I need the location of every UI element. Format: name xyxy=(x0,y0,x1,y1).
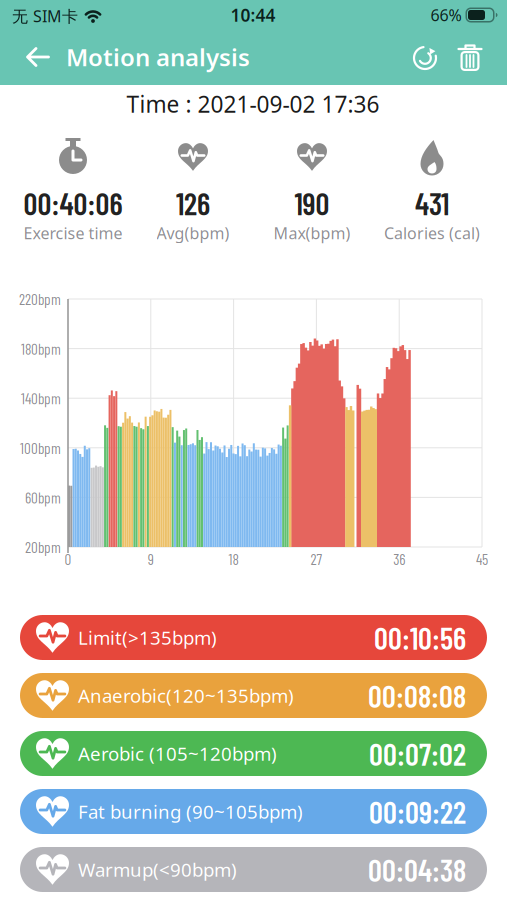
staticText: 220bpm xyxy=(19,290,61,308)
button[interactable]: Warmup(<90bpm) xyxy=(20,847,487,892)
staticText: 00:07:02 xyxy=(369,735,466,772)
staticText: Limit(>135bpm) xyxy=(78,625,217,650)
button[interactable]: Refresh xyxy=(405,37,445,77)
staticText: 9 xyxy=(148,550,154,568)
staticText: 60bpm xyxy=(25,488,61,506)
staticText: Warmup(<90bpm) xyxy=(78,857,237,882)
staticText: 10:44 xyxy=(230,3,275,26)
staticText: 00:40:06 xyxy=(23,185,122,221)
staticText: Calories (cal) xyxy=(384,222,480,244)
staticText: 00:10:56 xyxy=(374,619,466,656)
staticText: 431 xyxy=(415,185,449,221)
button[interactable]: Fat burning (90~105bpm) xyxy=(20,789,487,834)
staticText: 140bpm xyxy=(21,389,61,407)
staticText: 36 xyxy=(393,550,405,568)
staticText: Motion analysis xyxy=(66,41,250,73)
button[interactable]: Delete xyxy=(450,37,490,77)
staticText: Fat burning (90~105bpm) xyxy=(78,799,303,824)
staticText: 20bpm xyxy=(25,538,61,556)
staticText: Aerobic (105~120bpm) xyxy=(78,741,277,766)
staticText: 00:04:38 xyxy=(368,851,466,888)
staticText: 126 xyxy=(176,185,210,221)
staticText: 66% xyxy=(430,4,461,26)
staticText: 00:09:22 xyxy=(369,793,466,830)
staticText: 00:08:08 xyxy=(368,677,466,714)
staticText: 45 xyxy=(476,550,488,568)
staticText: 190 xyxy=(294,185,329,221)
staticText: Exercise time xyxy=(23,222,122,244)
staticText: 0 xyxy=(64,550,71,568)
staticText: 无 SIM卡 xyxy=(12,5,78,27)
button[interactable]: Aerobic (105~120bpm) xyxy=(20,731,487,776)
button[interactable]: Limit(>135bpm) xyxy=(20,615,487,660)
staticText: Anaerobic(120~135bpm) xyxy=(78,683,294,708)
staticText: 27 xyxy=(310,550,322,568)
staticText: Avg(bpm) xyxy=(156,222,229,244)
staticText: 100bpm xyxy=(20,439,61,457)
staticText: Time : 2021-09-02 17:36 xyxy=(126,89,379,119)
staticText: 180bpm xyxy=(21,339,61,358)
staticText: 18 xyxy=(229,550,239,568)
staticText: Max(bpm) xyxy=(273,222,350,244)
button[interactable]: Anaerobic(120~135bpm) xyxy=(20,673,487,718)
button[interactable]: Back xyxy=(16,37,60,77)
